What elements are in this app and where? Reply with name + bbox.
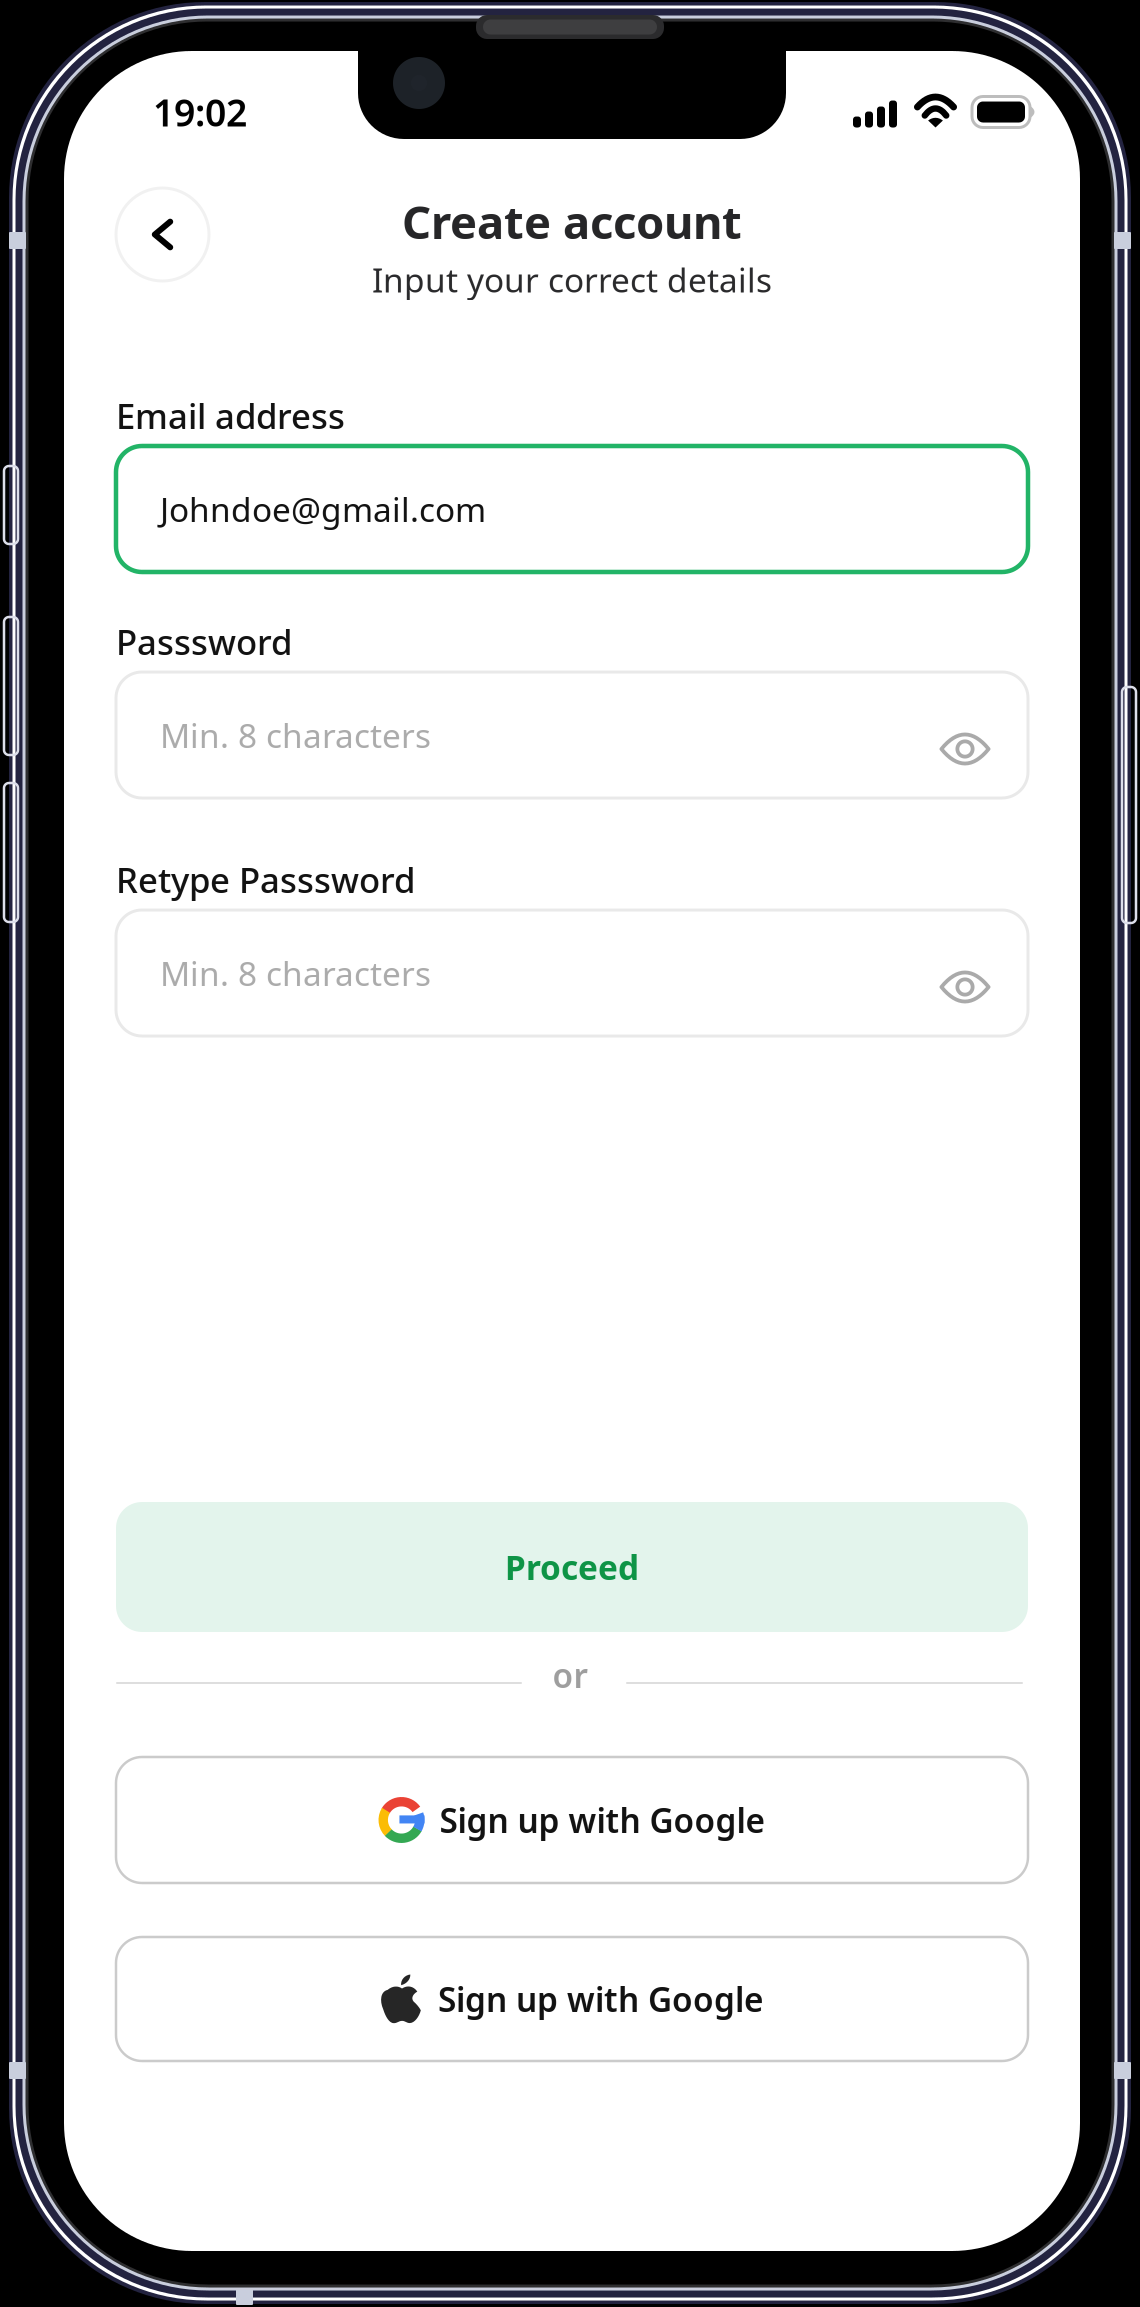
staticText: Sign up with Google [439, 1798, 765, 1842]
button[interactable]: Show password [926, 690, 1004, 780]
button[interactable]: Sign up with Google [116, 1937, 1028, 2061]
staticText: Sign up with Google [438, 1977, 764, 2021]
button[interactable]: Sign up with Google [116, 1757, 1028, 1883]
staticText: 19:02 [153, 87, 247, 137]
staticText: Email address [116, 392, 345, 438]
staticText: Min. 8 characters [160, 951, 431, 995]
staticText: Johndoe@gmail.com [160, 487, 486, 531]
staticText: Passsword [116, 618, 292, 664]
staticText: Input your correct details [372, 257, 772, 302]
staticText: Retype Passsword [116, 856, 415, 902]
staticText: or [552, 1653, 587, 1697]
button[interactable]: Show password [926, 928, 1004, 1018]
staticText: Min. 8 characters [160, 713, 431, 757]
button[interactable]: Back [116, 188, 209, 281]
staticText: Proceed [505, 1545, 639, 1589]
staticText: Create account [402, 191, 742, 252]
button[interactable]: Proceed [116, 1502, 1028, 1632]
